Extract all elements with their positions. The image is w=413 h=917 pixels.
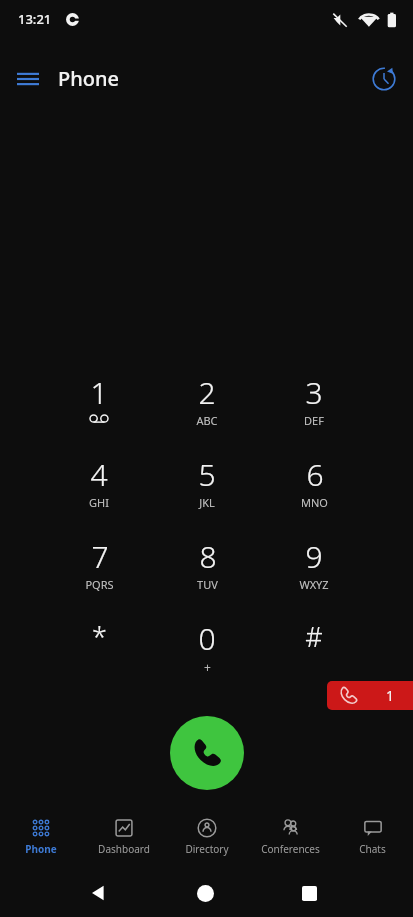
- staticText: *: [92, 618, 107, 655]
- staticText: PQRS: [85, 577, 114, 592]
- staticText: ABC: [196, 413, 218, 428]
- button[interactable]: 4: [55, 454, 143, 524]
- staticText: Dashboard: [98, 842, 150, 856]
- button[interactable]: 3: [270, 372, 358, 442]
- staticText: Conferences: [261, 842, 320, 856]
- staticText: 8: [199, 536, 217, 577]
- staticText: #: [305, 618, 323, 655]
- staticText: Phone: [58, 65, 119, 92]
- staticText: 3: [305, 372, 323, 413]
- button[interactable]: 9: [270, 536, 358, 606]
- staticText: 7: [91, 536, 109, 577]
- button[interactable]: 2: [163, 372, 251, 442]
- staticText: 9: [305, 536, 323, 577]
- button[interactable]: 8: [163, 536, 251, 606]
- button[interactable]: #: [270, 618, 358, 688]
- staticText: Phone: [25, 842, 57, 856]
- staticText: GHI: [89, 495, 109, 510]
- button[interactable]: 7: [55, 536, 143, 606]
- button[interactable]: 0: [163, 618, 251, 688]
- staticText: 2: [198, 372, 216, 413]
- button[interactable]: 5: [163, 454, 251, 524]
- staticText: WXYZ: [299, 577, 329, 592]
- button[interactable]: Phone: [0, 812, 82, 864]
- staticText: 6: [306, 454, 324, 495]
- button[interactable]: 6: [270, 454, 358, 524]
- staticText: DEF: [304, 413, 324, 428]
- staticText: Chats: [359, 842, 386, 856]
- button[interactable]: Chats: [331, 812, 413, 864]
- staticText: 1: [90, 372, 108, 413]
- staticText: TUV: [197, 577, 218, 592]
- button[interactable]: Call history: [363, 58, 405, 100]
- staticText: +: [204, 659, 211, 675]
- button[interactable]: Directory: [166, 812, 248, 864]
- staticText: 4: [90, 454, 108, 495]
- button[interactable]: Open navigation menu: [8, 59, 48, 99]
- button[interactable]: Conferences: [249, 812, 331, 864]
- button[interactable]: Call: [170, 716, 244, 790]
- staticText: 13:21: [18, 10, 52, 28]
- staticText: JKL: [199, 495, 215, 510]
- staticText: 0: [198, 618, 216, 659]
- button[interactable]: Active call: [327, 681, 413, 710]
- button[interactable]: *: [55, 618, 143, 688]
- staticText: 1: [386, 686, 395, 705]
- staticText: 5: [198, 454, 216, 495]
- button[interactable]: 1: [55, 372, 143, 442]
- staticText: MNO: [301, 495, 328, 510]
- staticText: Directory: [185, 842, 229, 856]
- button[interactable]: Dashboard: [83, 812, 165, 864]
